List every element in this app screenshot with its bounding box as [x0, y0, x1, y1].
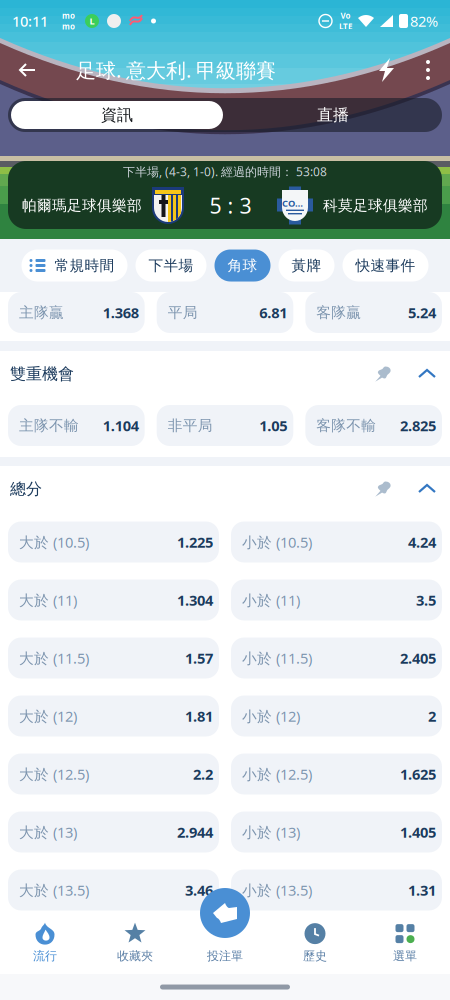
staticText: 投注單 — [207, 949, 243, 963]
staticText: 客隊不輸 — [316, 416, 376, 434]
button[interactable]: Back — [10, 52, 44, 88]
button[interactable]: Pin — [370, 476, 396, 501]
staticText: 大於 (10.5) — [19, 532, 89, 552]
staticText: 帕爾瑪足球俱樂部 — [22, 196, 142, 214]
button[interactable]: Live — [371, 58, 402, 82]
staticText: 小於 (13.5) — [242, 880, 312, 900]
button[interactable]: 選單 — [360, 917, 450, 969]
button[interactable]: 小於 (10.5) — [231, 521, 442, 562]
staticText: 小於 (13) — [242, 822, 300, 842]
button[interactable]: 收藏夾 — [90, 917, 180, 969]
button[interactable]: 大於 (12.5) — [8, 753, 219, 794]
button[interactable]: 平局 — [157, 292, 293, 333]
button[interactable]: 客隊贏 — [305, 292, 442, 333]
staticText: Vo — [340, 10, 350, 21]
staticText: 大於 (12) — [19, 706, 77, 726]
button[interactable]: 小於 (11) — [231, 579, 442, 620]
staticText: 大於 (13) — [19, 822, 77, 842]
staticText: 角球 — [227, 256, 257, 274]
button[interactable]: 非平局 — [157, 405, 293, 446]
staticText: COMO — [282, 197, 308, 209]
button[interactable]: 常規時間 — [21, 249, 127, 281]
staticText: 直播 — [317, 105, 349, 125]
button[interactable]: 大於 (11.5) — [8, 637, 219, 678]
button[interactable]: 大於 (10.5) — [8, 521, 219, 562]
button[interactable]: Pin — [370, 361, 396, 386]
staticText: 小於 (12) — [242, 706, 300, 726]
staticText: 4.24 — [408, 532, 436, 552]
staticText: 收藏夾 — [117, 949, 153, 963]
button[interactable]: 主隊贏 — [8, 292, 145, 333]
button[interactable]: 歷史 — [270, 917, 360, 969]
staticText: 2.825 — [400, 416, 436, 435]
staticText: 1.104 — [103, 416, 139, 435]
staticText: 1.57 — [185, 648, 213, 668]
staticText: 平局 — [168, 303, 198, 321]
button[interactable]: 小於 (11.5) — [231, 637, 442, 678]
staticText: 大於 (11) — [19, 590, 77, 610]
staticText: 選單 — [393, 949, 417, 963]
staticText: 1.225 — [177, 532, 213, 552]
staticText: 科莫足球俱樂部 — [323, 196, 428, 214]
staticText: 10:11 — [12, 11, 48, 31]
staticText: 主隊不輸 — [19, 416, 79, 434]
button[interactable]: 投注單 — [180, 917, 270, 969]
staticText: 總分 — [10, 479, 42, 499]
button[interactable]: Bet slip — [200, 888, 250, 938]
staticText: 小於 (10.5) — [242, 532, 312, 552]
staticText: 雙重機會 — [10, 364, 74, 384]
button[interactable]: 大於 (13.5) — [8, 869, 219, 910]
staticText: 2.405 — [400, 648, 436, 668]
staticText: 資訊 — [101, 105, 133, 125]
staticText: 常規時間 — [54, 256, 114, 274]
staticText: 1.368 — [103, 303, 139, 322]
staticText: 1.05 — [259, 416, 287, 435]
staticText: 下半場, (4-3, 1-0). 經過的時間： 53:08 — [123, 163, 327, 179]
button[interactable]: 直播 — [227, 101, 439, 129]
staticText: 流行 — [33, 949, 57, 963]
staticText: 快速事件 — [355, 256, 415, 274]
staticText: 2.2 — [193, 764, 213, 784]
button[interactable]: 小於 (13) — [231, 811, 442, 852]
staticText: 6.81 — [259, 303, 287, 322]
button[interactable]: Collapse — [414, 480, 440, 498]
staticText: 2 — [428, 706, 436, 726]
button[interactable]: 客隊不輸 — [305, 405, 442, 446]
staticText: 大於 (12.5) — [19, 764, 89, 784]
button[interactable]: 下半場 — [135, 249, 206, 281]
staticText: 小於 (12.5) — [242, 764, 312, 784]
button[interactable]: 大於 (13) — [8, 811, 219, 852]
button[interactable]: 流行 — [0, 917, 90, 969]
button[interactable]: Collapse — [414, 365, 440, 383]
staticText: 82% — [410, 11, 438, 31]
staticText: 下半場 — [148, 256, 193, 274]
button[interactable]: 黃牌 — [278, 249, 334, 281]
button[interactable]: 小於 (13.5) — [231, 869, 442, 910]
staticText: 5.24 — [408, 303, 436, 322]
staticText: 客隊贏 — [316, 303, 361, 321]
staticText: 1.81 — [185, 706, 213, 726]
button[interactable]: 大於 (11) — [8, 579, 219, 620]
staticText: 歷史 — [303, 949, 327, 963]
staticText: 非平局 — [168, 416, 213, 434]
staticText: 小於 (11.5) — [242, 648, 312, 668]
staticText: 1.304 — [177, 590, 213, 610]
button[interactable]: 小於 (12.5) — [231, 753, 442, 794]
button[interactable]: More — [416, 60, 440, 80]
staticText: LTE — [339, 21, 352, 32]
staticText: 1.405 — [400, 822, 436, 842]
button[interactable]: 快速事件 — [342, 249, 428, 281]
button[interactable]: 主隊不輸 — [8, 405, 145, 446]
staticText: 1.31 — [408, 880, 436, 900]
button[interactable]: 大於 (12) — [8, 695, 219, 736]
staticText: 1.625 — [400, 764, 436, 784]
staticText: 主隊贏 — [19, 303, 64, 321]
staticText: 大於 (13.5) — [19, 880, 89, 900]
button[interactable]: 資訊 — [11, 101, 223, 129]
staticText: 5 : 3 — [209, 191, 251, 220]
button[interactable]: 小於 (12) — [231, 695, 442, 736]
button[interactable]: 角球 — [214, 249, 270, 281]
staticText: L — [89, 15, 94, 27]
staticText: 3.5 — [416, 590, 436, 610]
staticText: 黃牌 — [291, 256, 321, 274]
